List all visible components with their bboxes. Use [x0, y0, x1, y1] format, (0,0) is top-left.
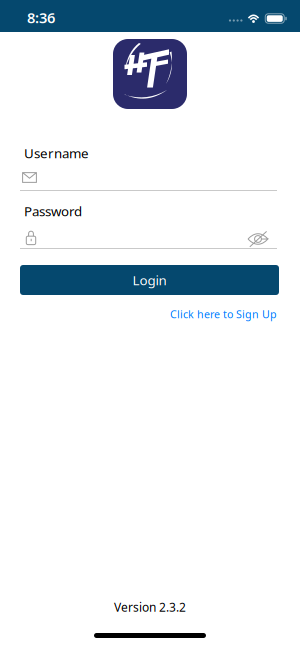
button[interactable]: Click here to Sign Up — [170, 307, 277, 321]
button[interactable]: Show password — [247, 231, 269, 247]
staticText: Login — [132, 271, 166, 289]
button[interactable]: Login — [20, 265, 279, 295]
staticText: Click here to Sign Up — [170, 307, 277, 321]
staticText: Username — [24, 144, 89, 162]
staticText: 8:36 — [27, 8, 55, 27]
staticText: Password — [24, 202, 82, 220]
staticText: Version 2.3.2 — [114, 599, 186, 615]
